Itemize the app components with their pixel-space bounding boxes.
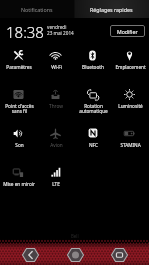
button[interactable]: Paramètres <box>0 46 37 85</box>
button[interactable]: NFC <box>74 124 111 163</box>
button[interactable]: LTE <box>37 163 74 202</box>
staticText: Avion <box>50 142 63 148</box>
button[interactable]: STAMINA <box>111 124 148 163</box>
button[interactable]: Bluetooth <box>74 46 111 85</box>
button[interactable]: Son <box>0 124 37 163</box>
button[interactable]: Emplacement <box>111 46 148 85</box>
staticText: Paramètres <box>6 64 32 70</box>
button[interactable]: Recent apps <box>104 244 134 265</box>
staticText: STAMINA <box>120 142 141 148</box>
button[interactable]: Notifications <box>0 0 74 18</box>
button[interactable]: Modifier <box>110 25 145 37</box>
staticText: Bell <box>71 233 79 239</box>
button[interactable]: Luminosité <box>111 85 148 124</box>
staticText: Mise en miroir <box>3 181 35 187</box>
button[interactable]: Avion <box>37 124 74 163</box>
staticText: Emplacement <box>115 64 146 70</box>
staticText: Point d'accès sans fil <box>5 103 34 115</box>
staticText: Bluetooth <box>82 64 104 70</box>
button[interactable]: Back <box>15 244 45 265</box>
staticText: Wi-Fi <box>51 64 62 70</box>
staticText: Réglages rapides <box>90 6 133 13</box>
button[interactable]: Home <box>60 244 90 265</box>
staticText: 23 mai 2014 <box>47 30 74 36</box>
staticText: Notifications <box>21 6 53 13</box>
staticText: vendredi <box>47 24 67 30</box>
staticText: 18:38 <box>6 22 44 42</box>
staticText: Son <box>15 142 24 148</box>
button[interactable]: Rotation automatique <box>74 85 111 124</box>
staticText: Throw <box>49 103 63 109</box>
button[interactable]: Point d'accès sans fil <box>0 85 37 124</box>
staticText: Luminosité <box>118 103 143 109</box>
staticText: Rotation automatique <box>79 103 108 115</box>
staticText: LTE <box>52 181 60 187</box>
button[interactable]: Throw <box>37 85 74 124</box>
button[interactable]: Réglages rapides <box>74 0 149 18</box>
button[interactable]: Wi-Fi <box>37 46 74 85</box>
button[interactable]: Mise en miroir <box>0 163 37 202</box>
staticText: NFC <box>89 142 98 148</box>
staticText: Modifier <box>117 28 138 35</box>
